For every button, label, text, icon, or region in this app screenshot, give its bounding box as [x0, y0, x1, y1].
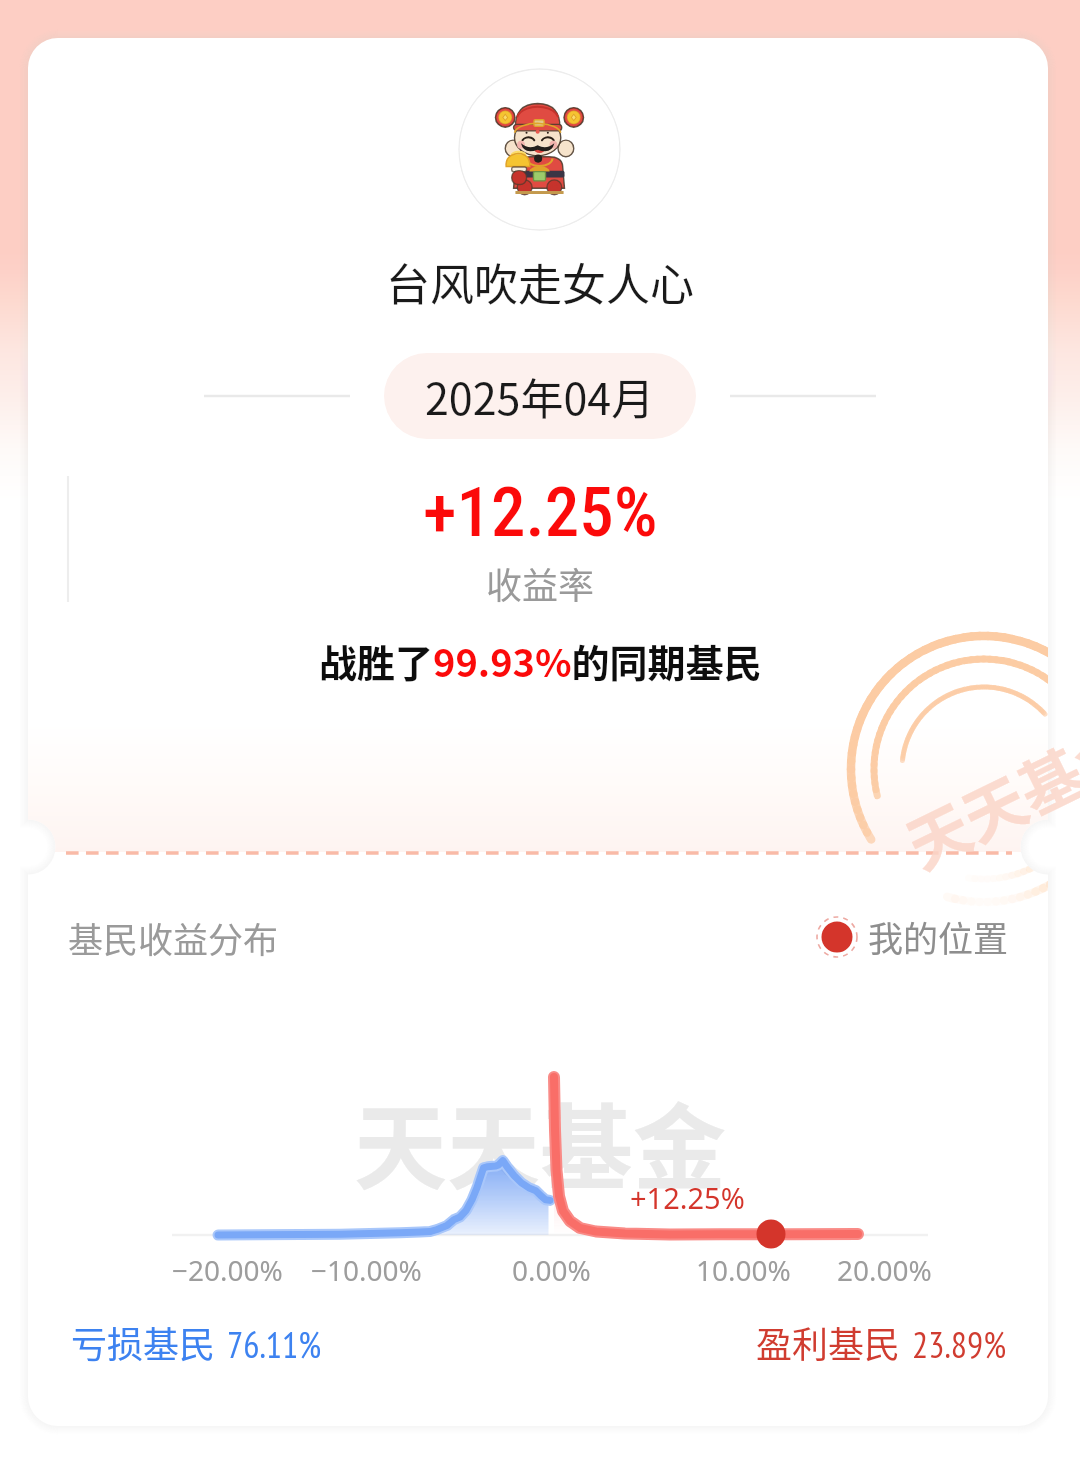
staticText: 2025年04月	[425, 365, 655, 427]
button[interactable]: 盈利基民	[756, 1316, 1007, 1368]
staticText: 我的位置	[868, 911, 1009, 962]
staticText: 0.00%	[512, 1251, 591, 1289]
staticText: −10.00%	[311, 1251, 422, 1289]
staticText: +12.25%	[423, 472, 658, 553]
button[interactable]: 我的位置	[814, 911, 1009, 962]
button[interactable]: 用户头像	[458, 68, 621, 231]
staticText: 战胜了99.93%的同期基民	[319, 633, 762, 688]
staticText: 亏损基民	[71, 1316, 216, 1368]
staticText: 10.00%	[696, 1251, 791, 1289]
button[interactable]: 2025年04月	[384, 353, 696, 439]
staticText: −20.00%	[172, 1251, 283, 1289]
staticText: +12.25%	[630, 1178, 745, 1217]
staticText: 20.00%	[837, 1251, 932, 1289]
staticText: 天天基金	[354, 1074, 726, 1209]
staticText: 76.11%	[227, 1321, 322, 1368]
button[interactable]: 亏损基民	[71, 1316, 322, 1368]
staticText: 盈利基民	[756, 1316, 901, 1368]
staticText: 23.89%	[912, 1321, 1007, 1368]
staticText: 基民收益分布	[68, 912, 279, 963]
staticText: 天天基金	[890, 697, 1080, 887]
staticText: 收益率	[486, 557, 595, 609]
staticText: 台风吹走女人心	[386, 250, 694, 314]
